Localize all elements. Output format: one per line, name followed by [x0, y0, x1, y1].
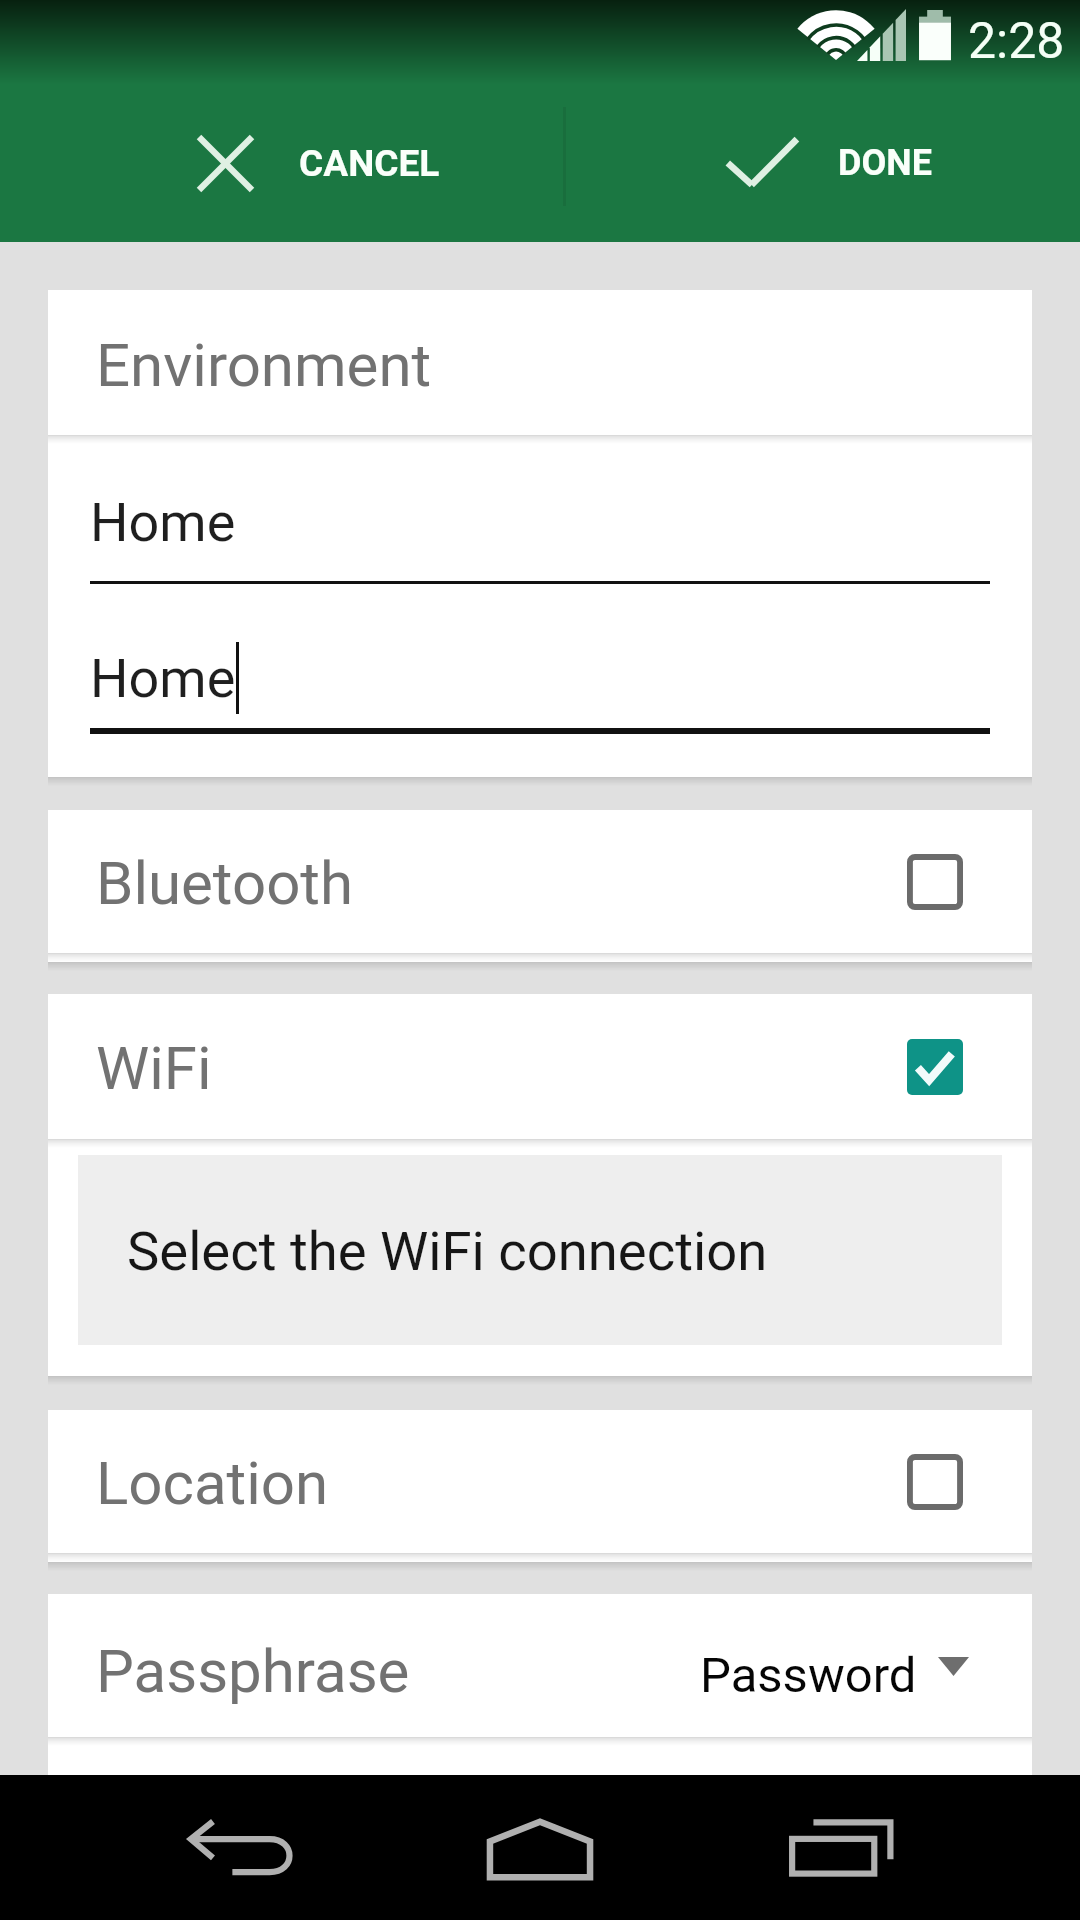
staticText: 2:28	[968, 12, 1065, 71]
button[interactable]: Location	[48, 1410, 1032, 1553]
button[interactable]: Bluetooth	[48, 810, 1032, 953]
staticText: CANCEL	[299, 142, 440, 185]
staticText: Bluetooth	[96, 848, 354, 918]
button[interactable]: Environment	[48, 290, 1032, 435]
button[interactable]: Recents	[781, 1787, 901, 1907]
staticText: Home	[90, 491, 236, 554]
button[interactable]: CANCEL	[0, 84, 564, 242]
staticText: DONE	[838, 142, 932, 184]
staticText: Select the WiFi connection	[127, 1220, 768, 1284]
staticText: Location	[96, 1448, 329, 1518]
staticText: Home	[90, 647, 236, 710]
button[interactable]: DONE	[564, 84, 1080, 242]
button[interactable]: Select the WiFi connection	[78, 1155, 1002, 1345]
staticText: WiFi	[96, 1033, 212, 1103]
button[interactable]: Passphrase	[48, 1594, 1032, 1737]
button[interactable]: Home	[90, 491, 236, 554]
button[interactable]: Back	[179, 1787, 299, 1907]
button[interactable]: Home	[480, 1789, 600, 1909]
staticText: Passphrase	[96, 1636, 410, 1706]
button[interactable]: Home	[90, 638, 239, 710]
staticText: Password	[700, 1647, 917, 1704]
staticText: Environment	[96, 330, 432, 400]
button[interactable]: WiFi	[48, 994, 1032, 1139]
